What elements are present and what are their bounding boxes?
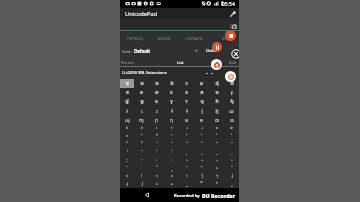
- button[interactable]: ˤ: [179, 172, 194, 180]
- button[interactable]: ɗ: [224, 79, 239, 88]
- button[interactable]: ɢ: [149, 97, 164, 106]
- button[interactable]: ɛ: [164, 88, 179, 97]
- button[interactable]: ˥: [194, 172, 209, 180]
- button[interactable]: ˁ: [134, 140, 149, 148]
- button[interactable]: ˋ: [164, 148, 179, 156]
- button[interactable]: ˆ: [209, 140, 224, 148]
- button[interactable]: Edit: [203, 57, 239, 67]
- button[interactable]: ʻ: [164, 132, 179, 140]
- button[interactable]: Close: [231, 49, 239, 59]
- button[interactable]: ɝ: [194, 88, 209, 97]
- button[interactable]: ɬ: [179, 106, 194, 115]
- button[interactable]: ɲ: [149, 115, 164, 124]
- button[interactable]: ˔: [179, 156, 194, 164]
- button[interactable]: ɚ: [149, 88, 164, 97]
- button[interactable]: ɯ: [224, 106, 239, 115]
- button[interactable]: ˫: [164, 180, 179, 188]
- button[interactable]: ɠ: [120, 97, 134, 106]
- button[interactable]: БО: [209, 32, 239, 44]
- button[interactable]: ʱ: [134, 124, 149, 132]
- button[interactable]: ˪: [149, 180, 164, 188]
- button[interactable]: Settings: [230, 11, 236, 17]
- button[interactable]: ˇ: [224, 140, 239, 148]
- button[interactable]: ɭ: [194, 106, 209, 115]
- button[interactable]: ˀ: [120, 140, 134, 148]
- button[interactable]: ʵ: [194, 124, 209, 132]
- button[interactable]: ʹ: [134, 132, 149, 140]
- button[interactable]: ʿ: [224, 132, 239, 140]
- button[interactable]: List: [160, 57, 200, 67]
- button[interactable]: ʷ: [224, 124, 239, 132]
- button[interactable]: ˗: [224, 156, 239, 164]
- button[interactable]: ˄: [179, 140, 194, 148]
- button[interactable]: ˚: [149, 164, 164, 172]
- button[interactable]: ʸ: [120, 132, 134, 140]
- button[interactable]: ˙: [134, 164, 149, 172]
- button[interactable]: ʺ: [149, 132, 164, 140]
- button[interactable]: ˧: [224, 172, 239, 180]
- button[interactable]: ɞ: [209, 88, 224, 97]
- button[interactable]: ˂: [149, 140, 164, 148]
- button[interactable]: ɒ: [149, 79, 164, 88]
- button[interactable]: ɳ: [164, 115, 179, 124]
- button[interactable]: ˊ: [149, 148, 164, 156]
- button[interactable]: ˢ: [149, 172, 164, 180]
- button[interactable]: ɤ: [179, 97, 194, 106]
- button[interactable]: ПЕРЕВОД: [120, 32, 149, 44]
- button[interactable]: ˩: [134, 180, 149, 188]
- button[interactable]: ˭: [194, 180, 209, 188]
- button[interactable]: ˜: [179, 164, 194, 172]
- button[interactable]: ˣ: [164, 172, 179, 180]
- button[interactable]: ɨ: [120, 106, 134, 115]
- button[interactable]: ː: [120, 156, 134, 164]
- button[interactable]: ɜ: [179, 88, 194, 97]
- button[interactable]: ДЕТАЛИ: [149, 32, 179, 44]
- button[interactable]: ɧ: [224, 97, 239, 106]
- button[interactable]: ɶ: [209, 115, 224, 124]
- button[interactable]: Camera: [211, 59, 222, 70]
- button[interactable]: ɥ: [194, 97, 209, 106]
- button[interactable]: НОРМАЛЬ: [179, 32, 209, 44]
- button[interactable]: ɫ: [164, 106, 179, 115]
- button[interactable]: ˡ: [134, 172, 149, 180]
- button[interactable]: ɕ: [194, 79, 209, 88]
- button[interactable]: ˅: [194, 140, 209, 148]
- button[interactable]: ɖ: [209, 79, 224, 88]
- button[interactable]: ɦ: [209, 97, 224, 106]
- button[interactable]: ˍ: [194, 148, 209, 156]
- button[interactable]: ɴ: [179, 115, 194, 124]
- button[interactable]: ˦: [209, 172, 224, 180]
- button[interactable]: ˎ: [209, 148, 224, 156]
- button[interactable]: ˞: [209, 164, 224, 172]
- button[interactable]: ɷ: [224, 115, 239, 124]
- button[interactable]: ˘: [120, 164, 134, 172]
- button[interactable]: ˠ: [120, 172, 134, 180]
- button[interactable]: ʼ: [179, 132, 194, 140]
- button[interactable]: ˉ: [134, 148, 149, 156]
- button[interactable]: ˑ: [134, 156, 149, 164]
- button[interactable]: ɣ: [164, 97, 179, 106]
- button[interactable]: ɵ: [194, 115, 209, 124]
- button[interactable]: ˒: [149, 156, 164, 164]
- button[interactable]: ˬ: [179, 180, 194, 188]
- button[interactable]: ʶ: [209, 124, 224, 132]
- button[interactable]: ʽ: [194, 132, 209, 140]
- button[interactable]: ɮ: [209, 106, 224, 115]
- button[interactable]: ɡ: [134, 97, 149, 106]
- button[interactable]: ˖: [209, 156, 224, 164]
- button[interactable]: ɪ: [149, 106, 164, 115]
- button[interactable]: ˈ: [120, 148, 134, 156]
- button[interactable]: ˕: [194, 156, 209, 164]
- button[interactable]: Recent: [120, 57, 160, 67]
- button[interactable]: ɓ: [164, 79, 179, 88]
- button[interactable]: ɘ: [120, 88, 134, 97]
- button[interactable]: ˏ: [224, 148, 239, 156]
- button[interactable]: ʲ: [149, 124, 164, 132]
- button[interactable]: ˮ: [209, 180, 224, 188]
- button[interactable]: ʰ: [120, 124, 134, 132]
- button[interactable]: ʾ: [209, 132, 224, 140]
- button[interactable]: Pause recording: [212, 42, 222, 52]
- button[interactable]: ˝: [194, 164, 209, 172]
- button[interactable]: ɐ: [120, 79, 134, 88]
- button[interactable]: ˓: [164, 156, 179, 164]
